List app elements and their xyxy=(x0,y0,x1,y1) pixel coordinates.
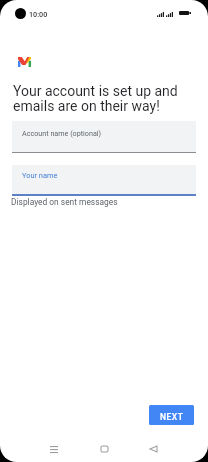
button[interactable]: Back xyxy=(139,435,167,462)
staticText: Your account is set up and emails are on… xyxy=(13,83,178,115)
button[interactable]: Recents xyxy=(40,435,68,462)
staticText: Your name xyxy=(22,171,58,180)
button[interactable]: Your name xyxy=(12,165,196,194)
button[interactable]: NEXT xyxy=(149,405,194,425)
staticText: Account name (optional) xyxy=(22,129,102,137)
button[interactable]: Account name (optional) xyxy=(12,121,196,152)
button[interactable]: Home xyxy=(90,435,118,462)
staticText: Displayed on sent messages xyxy=(11,197,118,207)
staticText: NEXT xyxy=(160,412,184,422)
staticText: 10:00 xyxy=(29,10,48,18)
